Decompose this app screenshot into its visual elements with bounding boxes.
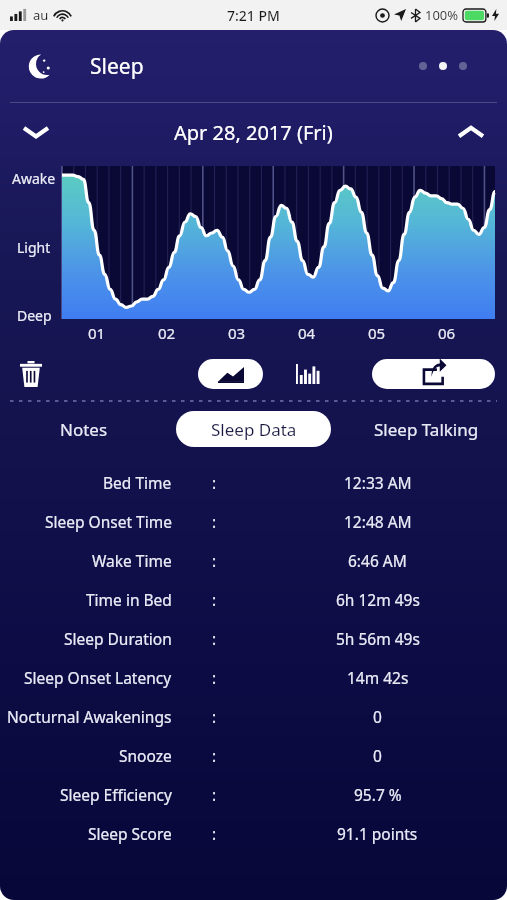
staticText: : [212, 823, 217, 844]
staticText: 6h 12m 49s [336, 589, 420, 610]
staticText: 91.1 points [337, 823, 418, 844]
staticText: Notes [60, 418, 108, 441]
staticText: Sleep Efficiency [60, 784, 172, 805]
staticText: Awake [12, 169, 56, 188]
staticText: 05 [368, 323, 386, 343]
button[interactable]: Sleep Onset Latency [0, 658, 507, 697]
staticText: Sleep Duration [64, 628, 172, 649]
button[interactable]: Time in Bed [0, 580, 507, 619]
button[interactable]: Nocturnal Awakenings [0, 697, 507, 736]
staticText: 06 [438, 323, 456, 343]
button[interactable]: Wake Time [0, 541, 507, 580]
button[interactable]: Sleep menu [20, 44, 64, 88]
button[interactable]: Sleep Efficiency [0, 775, 507, 814]
staticText: 7:21 PM [227, 6, 280, 25]
staticText: 12:48 AM [344, 511, 412, 532]
staticText: 02 [158, 323, 176, 343]
staticText: : [212, 745, 217, 766]
staticText: Sleep Data [211, 418, 297, 441]
staticText: 14m 42s [347, 667, 409, 688]
button[interactable]: Statistics [288, 354, 328, 394]
button[interactable]: Next day [449, 110, 493, 154]
staticText: 0 [373, 745, 382, 766]
button[interactable]: Sleep Data [176, 411, 331, 447]
staticText: Wake Time [92, 550, 172, 571]
staticText: 6:46 AM [348, 550, 407, 571]
staticText: Apr 28, 2017 (Fri) [174, 119, 333, 146]
staticText: Sleep [90, 52, 144, 81]
button[interactable]: Snooze [0, 736, 507, 775]
staticText: 95.7 % [354, 784, 402, 805]
staticText: : [212, 784, 217, 805]
button[interactable]: Delete [8, 351, 54, 397]
staticText: au [33, 6, 49, 24]
staticText: Bed Time [103, 472, 172, 493]
button[interactable]: Bed Time [0, 463, 507, 502]
staticText: 12:33 AM [344, 472, 412, 493]
staticText: : [212, 472, 217, 493]
button[interactable]: Sleep Onset Time [0, 502, 507, 541]
staticText: : [212, 706, 217, 727]
staticText: : [212, 628, 217, 649]
staticText: Sleep Score [88, 823, 172, 844]
staticText: Nocturnal Awakenings [7, 706, 172, 727]
button[interactable]: Graph view [198, 359, 263, 389]
button[interactable]: Previous day [14, 110, 58, 154]
staticText: Time in Bed [86, 589, 172, 610]
staticText: Deep [17, 306, 52, 325]
staticText: Sleep Onset Time [45, 511, 172, 532]
staticText: 100% [425, 6, 459, 24]
staticText: Sleep Talking [374, 418, 479, 441]
staticText: Snooze [119, 745, 172, 766]
button[interactable]: Sleep Talking [364, 411, 489, 447]
staticText: 01 [88, 323, 106, 343]
staticText: 03 [228, 323, 246, 343]
staticText: : [212, 511, 217, 532]
staticText: 04 [298, 323, 316, 343]
button[interactable]: Notes [46, 411, 122, 447]
staticText: : [212, 550, 217, 571]
staticText: : [212, 667, 217, 688]
staticText: Light [17, 238, 51, 257]
staticText: Sleep Onset Latency [24, 667, 172, 688]
button[interactable]: Sleep Score [0, 814, 507, 853]
button[interactable]: Share [372, 359, 495, 389]
staticText: 5h 56m 49s [336, 628, 420, 649]
staticText: : [212, 589, 217, 610]
staticText: 0 [373, 706, 382, 727]
button[interactable]: Sleep Duration [0, 619, 507, 658]
